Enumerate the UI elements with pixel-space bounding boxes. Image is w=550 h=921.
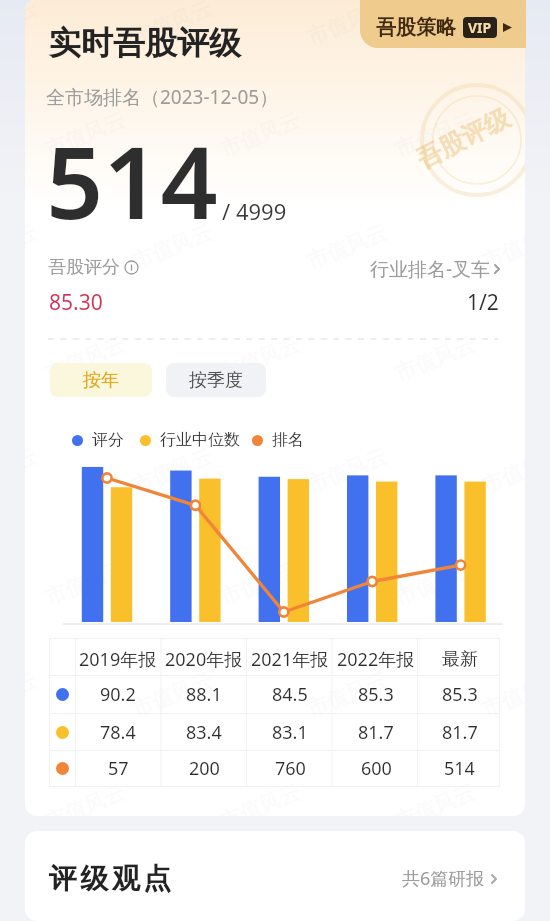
staticText: 2021年报 <box>251 647 329 672</box>
staticText: 行业中位数 <box>160 430 240 450</box>
staticText: 2022年报 <box>337 647 415 672</box>
staticText: 按季度 <box>189 369 243 392</box>
staticText: 评级观点 <box>47 861 173 896</box>
staticText: 市值风云 <box>128 0 216 51</box>
staticText: 市值风云 <box>128 443 216 499</box>
staticText: 2019年报 <box>79 647 157 672</box>
button[interactable]: 吾股策略 <box>360 0 526 48</box>
button[interactable]: 按季度 <box>166 363 266 397</box>
staticText: 84.5 <box>272 682 308 707</box>
staticText: 市值风云 <box>41 331 129 387</box>
staticText: 市值风云 <box>478 219 525 275</box>
staticText: 最新 <box>442 648 478 671</box>
button[interactable]: 行业排名-叉车 <box>370 256 500 282</box>
staticText: 85.30 <box>49 288 103 317</box>
staticText: 共6篇研报 <box>402 866 485 891</box>
staticText: 市值风云 <box>391 107 479 163</box>
staticText: 排名 <box>272 430 304 450</box>
staticText: 市值风云 <box>303 443 391 499</box>
staticText: 市值风云 <box>391 555 479 611</box>
staticText: 81.7 <box>358 720 394 745</box>
staticText: 90.2 <box>100 682 136 707</box>
staticText: 市值风云 <box>478 443 525 499</box>
button[interactable]: 共6篇研报 <box>402 866 497 891</box>
staticText: 市值风云 <box>478 0 525 51</box>
staticText: 按年 <box>83 369 119 392</box>
staticText: 85.3 <box>442 682 478 707</box>
staticText: 600 <box>361 756 392 781</box>
staticText: / 4999 <box>222 196 287 226</box>
staticText: 实时吾股评级 <box>49 23 241 63</box>
staticText: 2020年报 <box>165 647 243 672</box>
staticText: 81.7 <box>442 720 478 745</box>
staticText: 市值风云 <box>216 555 304 611</box>
staticText: 83.1 <box>272 720 308 745</box>
staticText: VIP <box>468 18 492 37</box>
staticText: 吾股评分 <box>48 256 120 279</box>
staticText: 吾股评级 <box>411 102 515 175</box>
staticText: 200 <box>189 756 220 781</box>
staticText: 514 <box>444 756 475 781</box>
staticText: 市值风云 <box>25 0 41 51</box>
button[interactable]: 按年 <box>50 363 152 397</box>
staticText: 市值风云 <box>128 219 216 275</box>
staticText: 行业排名-叉车 <box>370 256 491 282</box>
staticText: 85.3 <box>358 682 394 707</box>
staticText: 市值风云 <box>303 667 391 723</box>
staticText: 514 <box>46 112 218 248</box>
staticText: 市值风云 <box>41 555 129 611</box>
staticText: 全市场排名（2023-12-05） <box>46 84 279 110</box>
staticText: 市值风云 <box>41 107 129 163</box>
staticText: 吾股策略 <box>376 15 456 40</box>
staticText: 83.4 <box>186 720 222 745</box>
staticText: 市值风云 <box>303 0 391 51</box>
staticText: 1/2 <box>467 288 499 317</box>
staticText: 市值风云 <box>216 331 304 387</box>
staticText: 市值风云 <box>216 107 304 163</box>
staticText: 760 <box>275 756 306 781</box>
staticText: 评分 <box>92 430 124 450</box>
staticText: 市值风云 <box>303 219 391 275</box>
staticText: 78.4 <box>100 720 136 745</box>
staticText: 88.1 <box>186 682 222 707</box>
staticText: 57 <box>108 756 129 781</box>
staticText: 市值风云 <box>128 667 216 723</box>
